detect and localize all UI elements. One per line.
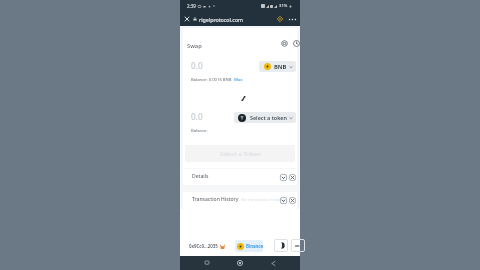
staticText: Select a Token [220,150,261,158]
button[interactable]: Close [288,196,296,204]
button[interactable]: Site extension [274,12,285,26]
staticText: Balance: [191,128,208,134]
button[interactable]: Home [234,257,246,269]
button[interactable]: Menu [291,239,305,252]
staticText: 0.0 [191,111,203,122]
button[interactable]: Recents [201,257,213,269]
button[interactable]: Transaction History [183,192,297,207]
button[interactable]: Binance [235,240,263,252]
staticText: Balance: 0.0016 BNB [191,77,232,83]
button[interactable]: More options [287,12,298,26]
button[interactable]: 0x9Cc0...2035 [189,243,225,249]
staticText: Binance [246,243,263,249]
staticText: Swap [187,42,202,50]
button[interactable]: Settings [280,39,289,48]
staticText: BNB [274,63,287,71]
staticText: 31% [279,3,288,9]
staticText: No transaction history [241,197,285,203]
button[interactable]: BNB [259,61,296,72]
button[interactable]: Select a token [234,112,296,123]
button[interactable]: Expand [279,173,287,181]
button[interactable]: Select a Token [185,145,295,162]
staticText: rigelprotocol.com [199,16,244,23]
button[interactable]: Details [183,169,297,184]
staticText: Select a token [250,114,287,121]
button[interactable]: Dark mode [274,239,288,252]
staticText: Transaction History [192,196,239,203]
staticText: 0.0 [191,60,203,71]
staticText: Max [234,77,243,83]
button[interactable]: Close [181,12,192,26]
button[interactable]: Close [288,173,296,181]
button[interactable]: Recent transactions [292,39,301,48]
staticText: 0x9Cc0...2035 [189,243,218,249]
button[interactable]: Back [267,257,279,269]
button[interactable]: Expand [279,196,287,204]
button[interactable]: Switch tokens [238,93,249,104]
button[interactable]: Max [234,77,243,83]
staticText: Details [192,173,209,180]
staticText: 2:39 [187,3,196,9]
